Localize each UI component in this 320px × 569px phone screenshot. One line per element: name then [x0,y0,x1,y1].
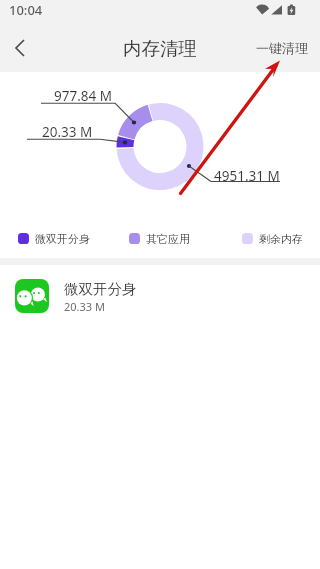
staticText: 剩余内存 [259,232,303,244]
staticText: 4951.31 M [214,167,280,185]
staticText: 内存清理 [123,37,197,60]
staticText: 微双开分身 [64,280,137,298]
button[interactable]: 一键清理 [244,28,320,68]
staticText: 10:04 [9,1,43,19]
staticText: 其它应用 [146,232,190,244]
button[interactable]: 微双开分身 [0,265,320,323]
button[interactable]: Back [0,28,40,68]
staticText: 20.33 M [42,123,93,141]
staticText: 一键清理 [256,40,308,56]
staticText: 977.84 M [54,87,112,105]
staticText: 20.33 M [64,299,105,314]
staticText: 微双开分身 [35,232,90,244]
